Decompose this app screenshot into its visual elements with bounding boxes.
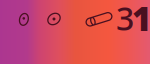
staticText: 1: [132, 0, 150, 40]
staticText: 3: [116, 0, 134, 39]
